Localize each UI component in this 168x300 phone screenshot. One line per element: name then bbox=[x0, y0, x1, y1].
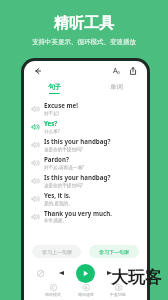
button[interactable]: 句子 bbox=[24, 81, 85, 96]
staticText: A bbox=[85, 285, 88, 290]
button[interactable]: Font size bbox=[108, 64, 122, 78]
button[interactable]: Thank you very much. bbox=[24, 207, 147, 225]
button[interactable]: Pardon? bbox=[24, 153, 147, 171]
staticText: 什么事? bbox=[44, 128, 60, 134]
staticText: 非常感谢。 bbox=[44, 218, 67, 224]
staticText: C bbox=[52, 285, 55, 290]
button[interactable]: Playback speed bbox=[125, 267, 137, 279]
staticText: a bbox=[117, 69, 120, 76]
button[interactable]: Share bbox=[126, 64, 140, 78]
staticText: Is this your handbag? bbox=[44, 137, 111, 145]
button[interactable]: 学习上一句课 bbox=[32, 245, 81, 258]
button[interactable]: Is this your handbag? bbox=[24, 171, 147, 189]
staticText: Yes, it is. bbox=[44, 191, 71, 199]
staticText: 精听工具 bbox=[54, 14, 114, 33]
button[interactable]: 学习下一句课 bbox=[89, 245, 139, 258]
staticText: 学习上一句课 bbox=[42, 249, 72, 255]
staticText: Thank you very much. bbox=[44, 209, 112, 217]
staticText: Excuse me! bbox=[44, 101, 79, 109]
staticText: 文 bbox=[117, 286, 121, 290]
staticText: 对不起! bbox=[44, 110, 60, 116]
button[interactable]: Is this your handbag? bbox=[24, 135, 147, 153]
staticText: Pardon? bbox=[44, 155, 69, 163]
button[interactable]: Excuse me! bbox=[24, 99, 147, 117]
button[interactable]: Yes? bbox=[24, 117, 147, 135]
staticText: 对不起,请再说一遍? bbox=[44, 164, 84, 170]
button[interactable]: Play bbox=[76, 264, 95, 283]
staticText: 学习下一句课 bbox=[99, 249, 129, 255]
button[interactable]: Repeat mode bbox=[34, 267, 46, 279]
staticText: 单词 bbox=[110, 83, 123, 91]
staticText: 播放速度 bbox=[78, 292, 94, 297]
staticText: 这是你的手提包吗? bbox=[44, 182, 83, 188]
staticText: A bbox=[113, 66, 118, 76]
button[interactable]: Back bbox=[31, 64, 45, 78]
staticText: 是的,是我的。 bbox=[44, 200, 73, 206]
button[interactable]: Previous bbox=[55, 267, 67, 279]
staticText: Yes? bbox=[44, 119, 58, 127]
staticText: Is this your handbag? bbox=[44, 173, 111, 181]
button[interactable]: 文 bbox=[110, 284, 126, 297]
button[interactable]: Next bbox=[104, 267, 116, 279]
button[interactable]: 单词 bbox=[85, 81, 147, 96]
staticText: 这是你的手提包吗? bbox=[44, 146, 83, 152]
button[interactable]: C bbox=[45, 284, 61, 297]
button[interactable]: A bbox=[78, 284, 94, 297]
staticText: 大玩客 bbox=[111, 267, 162, 288]
staticText: 循环模式 bbox=[45, 292, 61, 297]
staticText: 句子 bbox=[48, 83, 61, 91]
staticText: 中英切换 bbox=[110, 292, 126, 297]
button[interactable]: Yes, it is. bbox=[24, 189, 147, 207]
staticText: 支持中英显示、循环模式、变速播放 bbox=[32, 38, 136, 46]
